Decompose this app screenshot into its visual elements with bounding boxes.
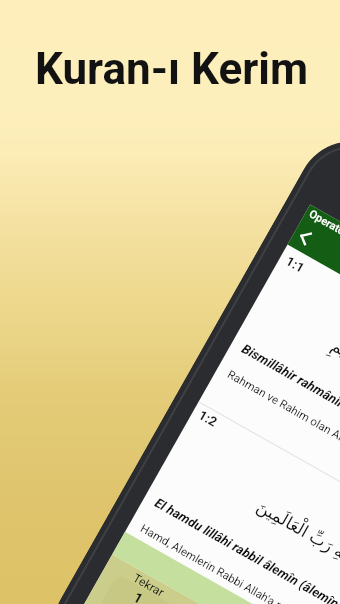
button[interactable]: 1:2 bbox=[112, 399, 340, 604]
staticText: Rahman ve Rahim olan Allah'ın adıyla bbox=[226, 367, 340, 472]
staticText: الْحَمْدُ لِلَّهِ رَبِّ الْعَالَمِينَ bbox=[174, 450, 340, 590]
staticText: Operatör bbox=[307, 207, 340, 240]
staticText: 1 bbox=[131, 589, 146, 604]
staticText: 1:2 bbox=[196, 407, 220, 430]
staticText: Bismillâhir rahmânir rahîm bbox=[239, 341, 340, 428]
staticText: Hamd, Alemlerin Rabbi Allah'a mahsustur bbox=[138, 521, 328, 604]
button[interactable]: 1:1 bbox=[199, 245, 340, 532]
staticText: بِسْمِ اللَّهِ الرَّحْمَٰنِ الرَّحِيمِ bbox=[261, 296, 340, 436]
staticText: 1:1 bbox=[283, 253, 307, 276]
button[interactable]: Back bbox=[290, 222, 322, 254]
staticText: Kuran-ı Kerim bbox=[35, 43, 309, 95]
button[interactable] bbox=[83, 573, 222, 604]
staticText: Tekrar bbox=[130, 571, 167, 600]
staticText: El hamdu lillâhi rabbil âlemîn (âlemîne) bbox=[152, 495, 340, 604]
